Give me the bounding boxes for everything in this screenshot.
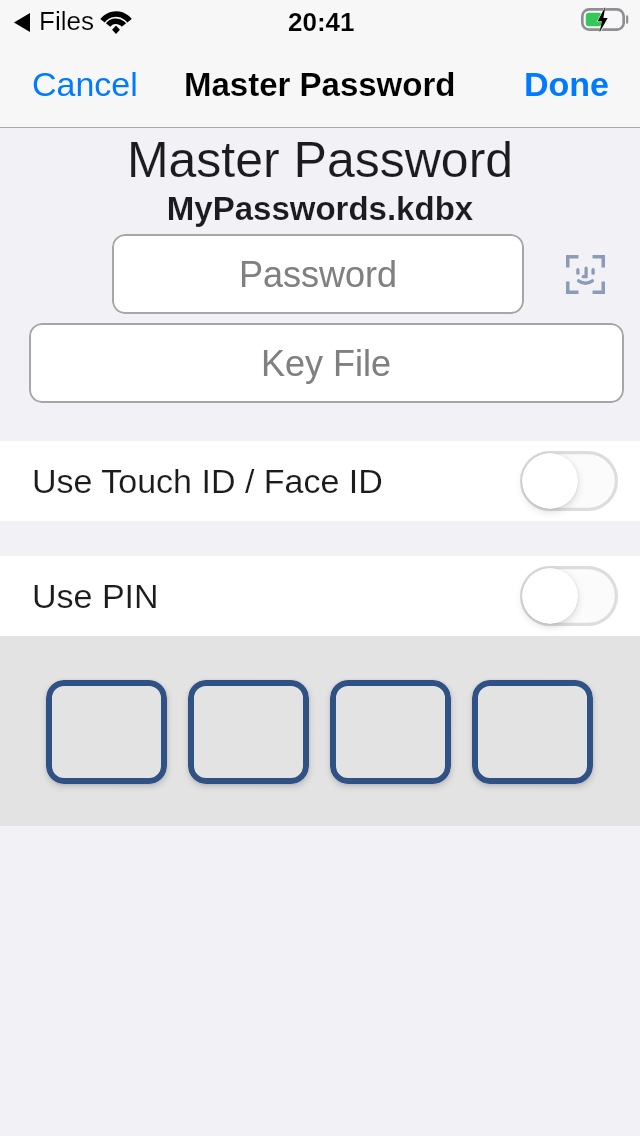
button[interactable]: Unlock with Face ID bbox=[556, 245, 614, 303]
button[interactable]: Key File bbox=[29, 323, 624, 403]
staticText: Master Password bbox=[0, 132, 640, 188]
staticText: Use PIN bbox=[32, 577, 159, 615]
staticText: Master Password bbox=[184, 66, 456, 103]
staticText: 20:41 bbox=[288, 7, 355, 36]
staticText: Done bbox=[524, 65, 609, 103]
button[interactable]: Done bbox=[508, 55, 625, 113]
button[interactable]: PIN digit bbox=[188, 680, 309, 784]
staticText: MyPasswords.kdbx bbox=[0, 190, 640, 227]
staticText: Files bbox=[39, 6, 94, 35]
staticText: Key File bbox=[261, 343, 392, 383]
button[interactable]: Password bbox=[112, 234, 524, 314]
staticText: Use Touch ID / Face ID bbox=[32, 462, 383, 500]
staticText: Cancel bbox=[32, 65, 138, 103]
button[interactable]: PIN digit bbox=[46, 680, 167, 784]
button[interactable]: Cancel bbox=[16, 55, 154, 113]
button[interactable]: PIN digit bbox=[330, 680, 451, 784]
button[interactable]: Use Touch ID / Face ID bbox=[0, 441, 640, 521]
staticText: Password bbox=[239, 254, 398, 294]
button[interactable]: Use PIN bbox=[0, 556, 640, 636]
button[interactable]: PIN digit bbox=[472, 680, 593, 784]
